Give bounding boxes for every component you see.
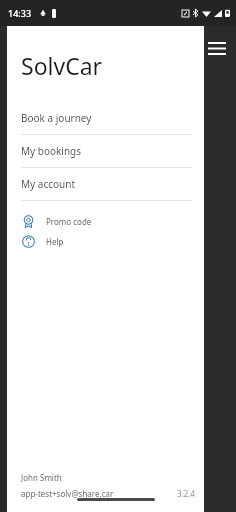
staticText: John Smith	[21, 472, 62, 483]
button[interactable]: Open navigation menu	[202, 33, 232, 63]
staticText: My bookings	[21, 144, 82, 158]
staticText: Promo code	[46, 216, 92, 227]
staticText: 14:33	[8, 7, 32, 19]
button[interactable]: Promo code	[7, 211, 204, 231]
staticText: 3.2.4	[177, 488, 196, 499]
staticText: Book a journey	[21, 111, 92, 125]
staticText: app-test+solv@share.car	[21, 488, 114, 499]
staticText: Help	[46, 236, 64, 247]
button[interactable]: Book a journey	[7, 102, 204, 134]
button[interactable]: My bookings	[7, 135, 204, 167]
staticText: My account	[21, 177, 75, 191]
button[interactable]: My account	[7, 168, 204, 200]
staticText: SolvCar	[21, 50, 103, 81]
button[interactable]: Help	[7, 231, 204, 251]
